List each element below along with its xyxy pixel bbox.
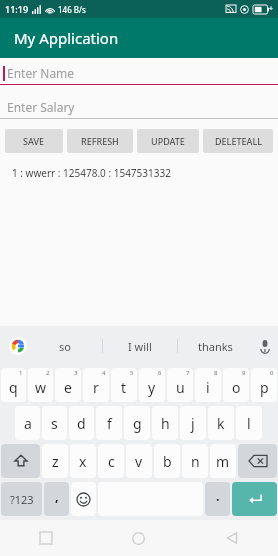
staticText: so <box>59 339 71 354</box>
staticText: l <box>247 414 251 433</box>
button[interactable]: z <box>42 444 68 478</box>
button[interactable]: Back <box>185 520 278 556</box>
staticText: s <box>51 414 58 433</box>
staticText: I will <box>128 339 152 354</box>
staticText: y <box>148 378 156 397</box>
button[interactable]: l <box>236 406 262 440</box>
button[interactable]: thanks <box>178 326 252 366</box>
button[interactable]: Voice input <box>252 326 278 366</box>
button[interactable]: w <box>28 368 53 402</box>
staticText: 11:19 <box>5 3 29 15</box>
button[interactable]: Home <box>92 520 185 556</box>
staticText: . <box>216 487 220 505</box>
button[interactable]: n <box>182 444 208 478</box>
staticText: UPDATE <box>151 135 185 147</box>
staticText: 6 <box>158 369 162 377</box>
button[interactable]: q <box>1 368 26 402</box>
staticText: t <box>121 378 127 397</box>
staticText: thanks <box>198 339 233 354</box>
staticText: 4 <box>102 369 106 377</box>
staticText: k <box>217 414 225 433</box>
button[interactable]: . <box>205 482 230 516</box>
button[interactable]: DELETEALL <box>203 129 273 153</box>
button[interactable]: j <box>180 406 206 440</box>
staticText: , <box>55 487 59 505</box>
staticText: z <box>52 452 59 471</box>
button[interactable]: ?123 <box>1 482 42 516</box>
button[interactable]: e <box>55 368 81 402</box>
button[interactable]: p <box>251 368 277 402</box>
staticText: e <box>64 378 72 397</box>
staticText: 1 : wwerr : 125478.0 : 1547531332 <box>12 166 171 180</box>
staticText: + <box>269 4 274 14</box>
staticText: Enter Name <box>7 65 75 81</box>
staticText: 8 <box>214 369 218 377</box>
button[interactable]: c <box>98 444 124 478</box>
button[interactable]: i <box>195 368 221 402</box>
staticText: 3 <box>74 369 78 377</box>
staticText: d <box>77 414 86 433</box>
button[interactable]: Enter <box>232 482 277 516</box>
staticText: 5 <box>130 369 134 377</box>
button[interactable]: f <box>96 406 122 440</box>
button[interactable]: h <box>152 406 178 440</box>
button[interactable]: so <box>28 326 102 366</box>
staticText: u <box>176 378 185 397</box>
staticText: w <box>35 378 47 397</box>
staticText: o <box>232 378 241 397</box>
button[interactable]: I will <box>103 326 177 366</box>
button[interactable]: s <box>42 406 67 440</box>
staticText: c <box>108 452 115 471</box>
staticText: 146 B/s <box>58 4 86 15</box>
staticText: 7 <box>186 369 190 377</box>
button[interactable]: r <box>83 368 109 402</box>
button[interactable]: v <box>126 444 152 478</box>
staticText: j <box>191 414 195 433</box>
staticText: i <box>206 378 210 397</box>
staticText: x <box>79 452 87 471</box>
button[interactable]: Enter Name <box>0 61 278 85</box>
button[interactable]: REFRESH <box>67 129 133 153</box>
button[interactable]: UPDATE <box>137 129 199 153</box>
button[interactable]: x <box>70 444 96 478</box>
button[interactable]: Recent apps <box>0 520 92 556</box>
button[interactable]: g <box>124 406 150 440</box>
staticText: g <box>133 414 142 433</box>
button[interactable]: a <box>15 406 40 440</box>
button[interactable]: o <box>223 368 249 402</box>
button[interactable]: m <box>210 444 236 478</box>
button[interactable]: SAVE <box>5 129 63 153</box>
button[interactable]: Google <box>8 336 28 356</box>
staticText: n <box>191 452 200 471</box>
staticText: SAVE <box>23 135 45 147</box>
staticText: p <box>260 378 269 397</box>
staticText: b <box>163 452 172 471</box>
button[interactable]: b <box>154 444 180 478</box>
staticText: h <box>161 414 170 433</box>
button[interactable]: Enter Salary <box>0 95 278 119</box>
staticText: 0 <box>270 369 274 377</box>
button[interactable]: u <box>167 368 193 402</box>
button[interactable]: y <box>139 368 165 402</box>
button[interactable]: , <box>44 482 69 516</box>
button[interactable]: d <box>69 406 94 440</box>
staticText: f <box>107 414 112 433</box>
staticText: My Application <box>14 28 119 48</box>
staticText: Enter Salary <box>7 99 75 115</box>
staticText: 2 <box>46 369 50 377</box>
button[interactable]: Emoji <box>71 482 96 516</box>
staticText: q <box>9 378 18 397</box>
staticText: 9 <box>242 369 246 377</box>
button[interactable]: t <box>111 368 137 402</box>
staticText: DELETEALL <box>215 135 262 147</box>
button[interactable]: Shift <box>1 444 40 478</box>
staticText: ?123 <box>10 492 34 507</box>
button[interactable]: k <box>208 406 234 440</box>
staticText: a <box>24 414 32 433</box>
staticText: 1 <box>19 369 23 377</box>
staticText: v <box>135 452 143 471</box>
staticText: r <box>93 378 99 397</box>
button[interactable]: Backspace <box>238 444 277 478</box>
staticText: REFRESH <box>81 135 119 147</box>
